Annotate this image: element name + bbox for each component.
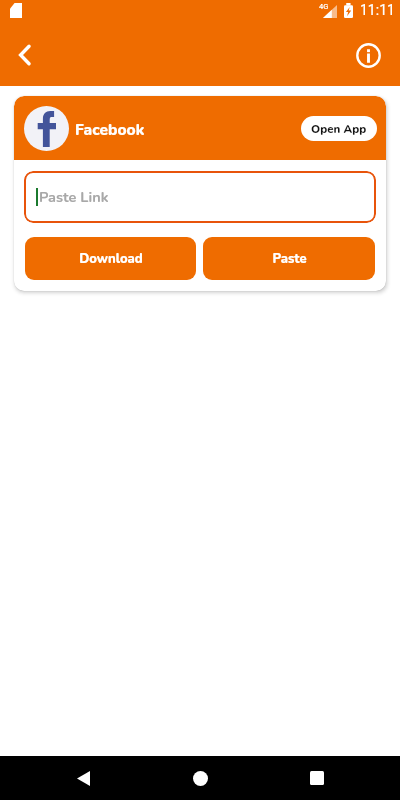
button[interactable]: Home: [178, 756, 222, 800]
button[interactable]: Paste Link: [24, 171, 376, 223]
button[interactable]: Back: [2, 32, 48, 78]
staticText: Open App: [311, 121, 367, 137]
button[interactable]: Open App: [301, 116, 377, 141]
staticText: Facebook: [75, 119, 145, 140]
button[interactable]: Back: [61, 756, 105, 800]
staticText: 11:11: [360, 2, 395, 18]
staticText: Paste: [272, 250, 307, 268]
staticText: Paste Link: [39, 187, 109, 207]
button[interactable]: Paste: [203, 237, 375, 280]
staticText: Download: [79, 250, 143, 268]
button[interactable]: Recents: [295, 756, 339, 800]
staticText: 4G: [319, 2, 329, 11]
button[interactable]: Info: [346, 33, 390, 77]
button[interactable]: Download: [25, 237, 196, 280]
